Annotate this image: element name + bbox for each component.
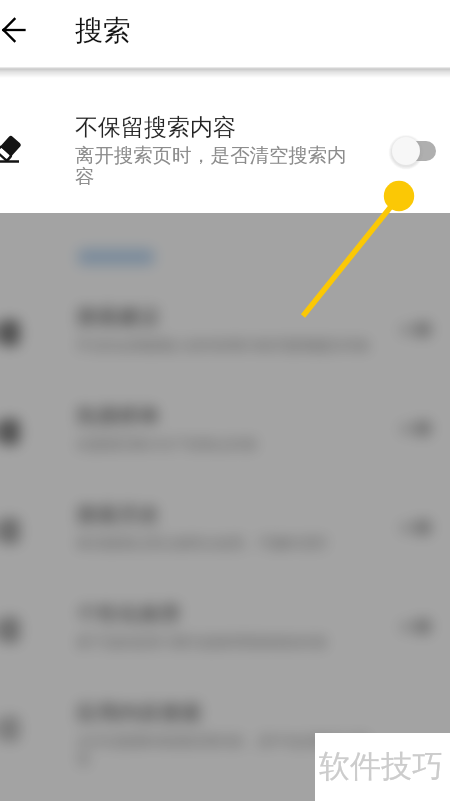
staticText: 允许在搜索时检索应用内容，其中包含聊天记录 等 <box>76 733 370 769</box>
button[interactable]: Back <box>0 6 38 54</box>
button[interactable]: Toggle do not keep search history <box>391 136 436 166</box>
staticText: 保存搜索记录以便再次使用，可随时清空 <box>76 535 328 553</box>
staticText: 软件技巧 <box>319 747 443 786</box>
staticText: 搜索历史 <box>76 502 160 528</box>
staticText: 搜索 <box>75 13 131 48</box>
button[interactable]: 不保留搜索内容 <box>0 0 450 213</box>
staticText: 应用内容搜索 <box>76 700 202 726</box>
staticText: 离开搜索页时，是否清空搜索内容 <box>75 143 351 189</box>
staticText: 个性化推荐 <box>76 601 181 627</box>
staticText: 不保留搜索内容 <box>75 113 236 142</box>
staticText: 热搜榜单 <box>76 403 160 429</box>
staticText: 搜索建议 <box>76 304 160 330</box>
